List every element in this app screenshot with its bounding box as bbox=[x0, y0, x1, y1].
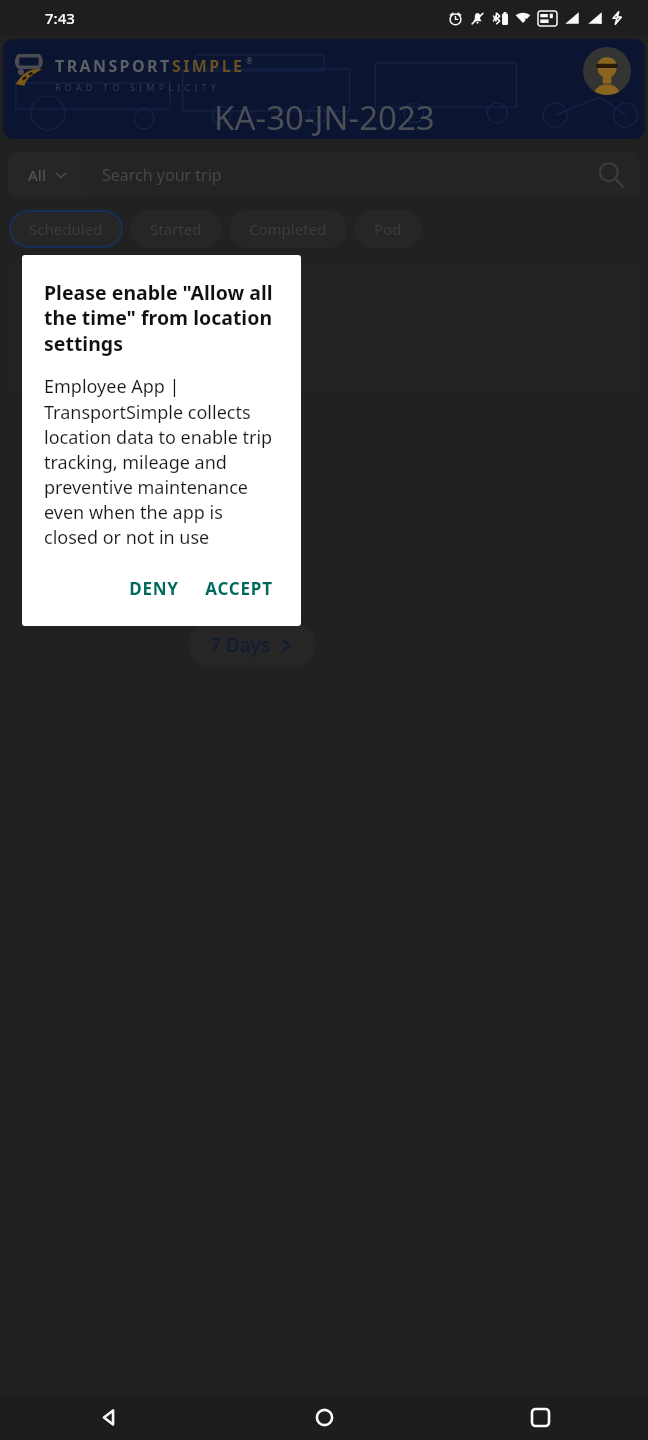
button[interactable]: 7 Days bbox=[188, 623, 316, 667]
button[interactable]: Home bbox=[216, 1394, 432, 1440]
staticText: Started bbox=[150, 219, 202, 239]
button[interactable]: Back bbox=[0, 1394, 216, 1440]
button[interactable]: Started bbox=[130, 210, 222, 248]
button[interactable]: Scheduled bbox=[9, 210, 123, 248]
staticText: Scheduled bbox=[29, 219, 103, 239]
button[interactable]: Profile bbox=[583, 47, 631, 95]
button[interactable]: Search bbox=[594, 158, 628, 192]
staticText: Completed bbox=[249, 219, 327, 239]
staticText: ACCEPT bbox=[205, 577, 273, 600]
staticText: KA-30-JN-2023 bbox=[214, 95, 435, 139]
button[interactable] bbox=[9, 265, 639, 393]
staticText: 7 Days bbox=[210, 632, 270, 658]
button[interactable]: Search your trip bbox=[86, 152, 640, 197]
button[interactable]: DENY bbox=[121, 569, 187, 608]
staticText: Please enable "Allow all the time" from … bbox=[44, 279, 281, 357]
button[interactable]: Recents bbox=[432, 1394, 648, 1440]
button[interactable]: ACCEPT bbox=[197, 569, 281, 608]
staticText: Pod bbox=[374, 219, 402, 239]
staticText: ® bbox=[246, 55, 253, 66]
staticText: SIMPLE bbox=[172, 55, 245, 77]
staticText: TRANSPORT bbox=[55, 55, 172, 77]
staticText: Search your trip bbox=[102, 164, 594, 186]
staticText: DENY bbox=[129, 577, 179, 600]
staticText: Employee App | TransportSimple collects … bbox=[44, 374, 281, 549]
button[interactable]: TRANSPORT bbox=[3, 39, 645, 139]
button[interactable]: All bbox=[8, 152, 86, 197]
staticText: ROAD TO SIMPLICITY bbox=[55, 81, 221, 93]
staticText: All bbox=[28, 165, 46, 185]
staticText: 7:43 bbox=[45, 8, 75, 28]
button[interactable]: Completed bbox=[229, 210, 347, 248]
button[interactable]: Pod bbox=[354, 210, 422, 248]
